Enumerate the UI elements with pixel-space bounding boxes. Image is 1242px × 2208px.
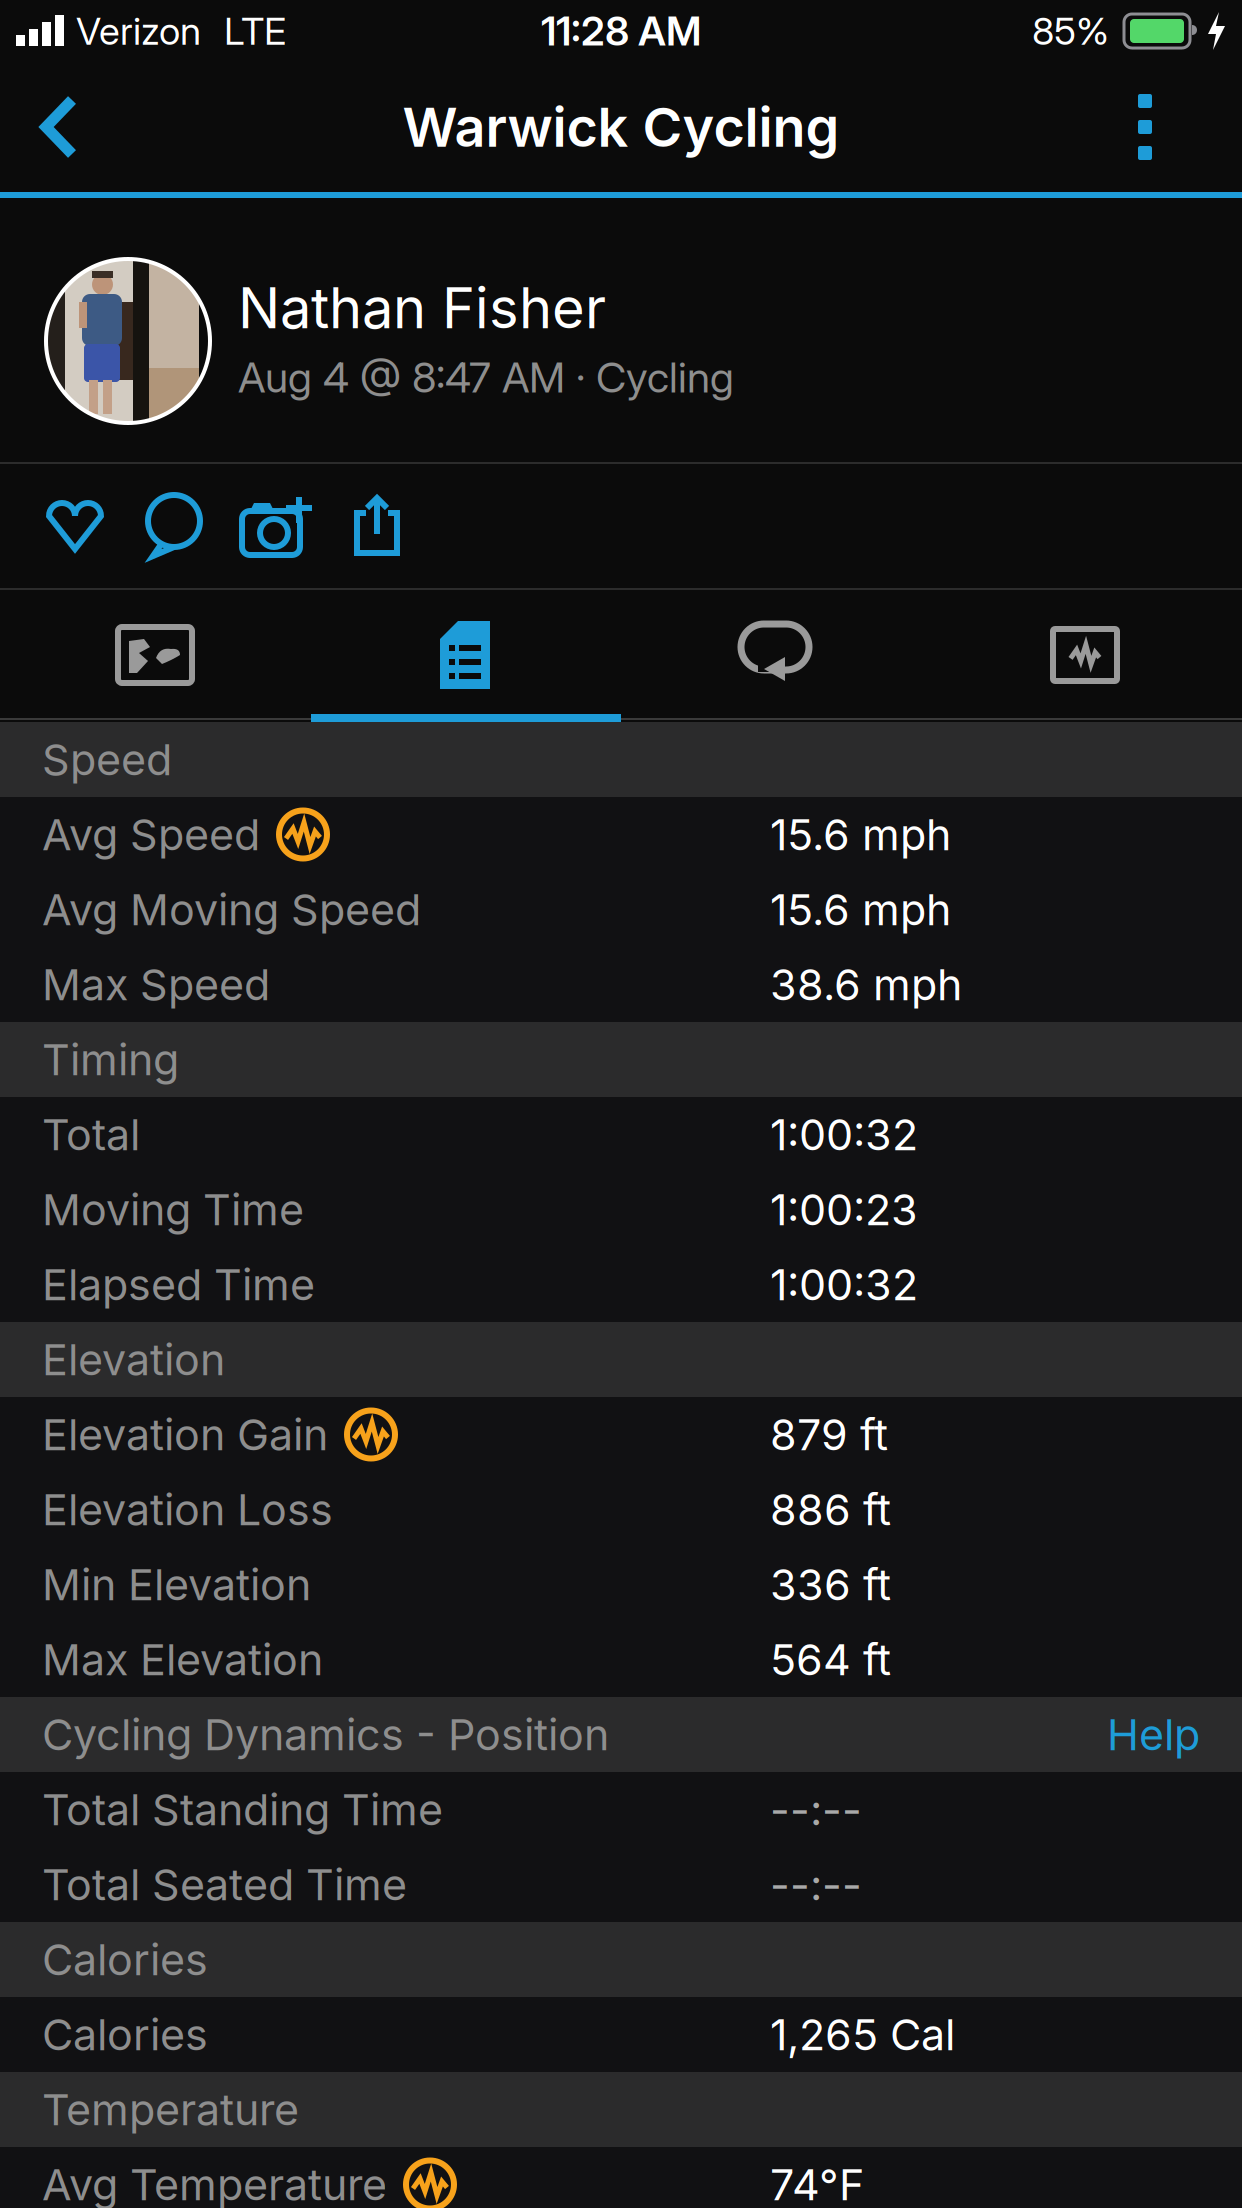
staticText: Timing [42, 1033, 179, 1085]
button[interactable]: Like [0, 500, 144, 552]
staticText: 11:28 AM [541, 7, 701, 55]
button[interactable]: Details [310, 590, 620, 720]
button[interactable]: Add photo [242, 497, 354, 555]
staticText: 1:00:23 [770, 1183, 918, 1235]
staticText: 879 ft [770, 1408, 888, 1460]
button[interactable]: Back [0, 95, 110, 159]
staticText: 1:00:32 [770, 1108, 918, 1160]
staticText: Elevation [42, 1333, 225, 1385]
staticText: Temperature [42, 2083, 299, 2135]
staticText: Avg Moving Speed [42, 883, 421, 935]
staticText: 74°F [770, 2158, 864, 2208]
staticText: 1:00:32 [770, 1258, 918, 1310]
staticText: Total Standing Time [42, 1783, 443, 1835]
button[interactable]: Charts [930, 590, 1240, 720]
staticText: Max Speed [42, 958, 270, 1010]
staticText: 38.6 mph [770, 958, 962, 1010]
button[interactable]: Help [1107, 1708, 1242, 1760]
staticText: Verizon [76, 8, 201, 54]
staticText: Calories [42, 2008, 208, 2060]
button[interactable]: Share [354, 496, 400, 556]
staticText: --:-- [770, 1858, 862, 1910]
staticText: Moving Time [42, 1183, 304, 1235]
button[interactable]: Map [0, 590, 310, 720]
staticText: 15.6 mph [770, 883, 951, 935]
staticText: --:-- [770, 1783, 862, 1835]
staticText: Avg Speed [42, 808, 260, 860]
staticText: Cycling Dynamics - Position [42, 1708, 609, 1760]
staticText: Max Elevation [42, 1633, 323, 1685]
staticText: Warwick Cycling [402, 94, 839, 160]
staticText: 85% [1032, 8, 1109, 54]
staticText: Min Elevation [42, 1558, 311, 1610]
staticText: Avg Temperature [42, 2158, 387, 2208]
staticText: Total [42, 1108, 140, 1160]
button[interactable]: More options [1108, 94, 1242, 160]
staticText: LTE [224, 8, 286, 54]
staticText: 564 ft [770, 1633, 891, 1685]
staticText: Elevation Loss [42, 1483, 333, 1535]
staticText: Nathan Fisher [238, 274, 606, 342]
staticText: 1,265 Cal [770, 2008, 955, 2060]
button[interactable]: Laps [620, 590, 930, 720]
staticText: Help [1107, 1708, 1200, 1760]
staticText: 15.6 mph [770, 808, 951, 860]
staticText: Elapsed Time [42, 1258, 315, 1310]
button[interactable]: Comment [144, 494, 242, 558]
staticText: 886 ft [770, 1483, 891, 1535]
staticText: Calories [42, 1933, 208, 1985]
staticText: Total Seated Time [42, 1858, 407, 1910]
staticText: Speed [42, 733, 172, 785]
staticText: Aug 4 @ 8:47 AM · Cycling [238, 352, 734, 403]
staticText: 336 ft [770, 1558, 891, 1610]
staticText: Elevation Gain [42, 1408, 328, 1460]
